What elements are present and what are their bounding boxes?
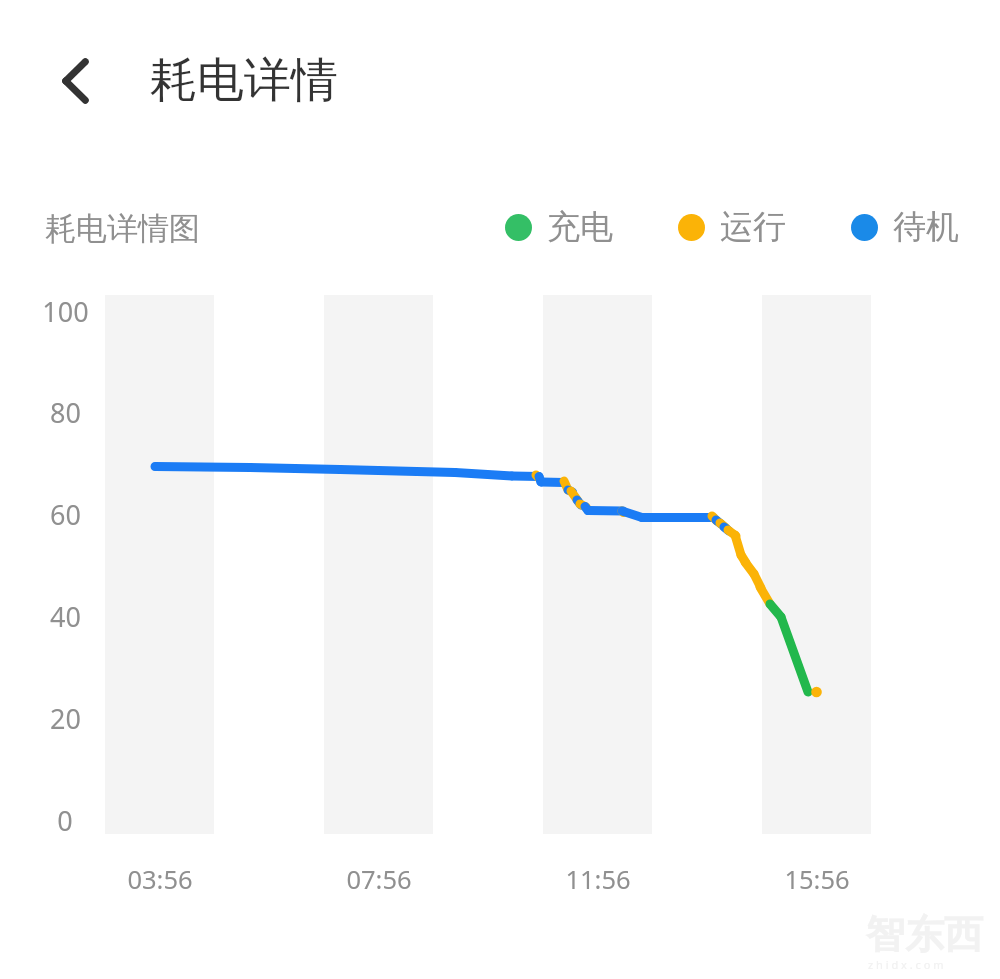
staticText: 20 — [50, 700, 81, 737]
staticText: 100 — [42, 293, 89, 330]
button[interactable]: 运行 — [678, 205, 786, 249]
staticText: 耗电详情 — [150, 51, 338, 110]
button[interactable]: 充电 — [505, 205, 613, 249]
staticText: 智东西 — [866, 910, 983, 959]
staticText: z h i d x . c o m — [868, 957, 944, 972]
staticText: 待机 — [893, 206, 959, 248]
staticText: 充电 — [547, 206, 613, 248]
staticText: 60 — [50, 496, 81, 533]
staticText: 11:56 — [565, 862, 631, 897]
staticText: 03:56 — [127, 862, 193, 897]
button[interactable]: 待机 — [851, 205, 959, 249]
staticText: 15:56 — [784, 862, 850, 897]
staticText: 80 — [50, 394, 81, 431]
button[interactable]: Back — [42, 48, 108, 114]
staticText: 07:56 — [346, 862, 412, 897]
staticText: 0 — [57, 802, 73, 839]
staticText: 运行 — [720, 206, 786, 248]
staticText: 耗电详情图 — [45, 209, 200, 248]
staticText: 40 — [50, 598, 81, 635]
